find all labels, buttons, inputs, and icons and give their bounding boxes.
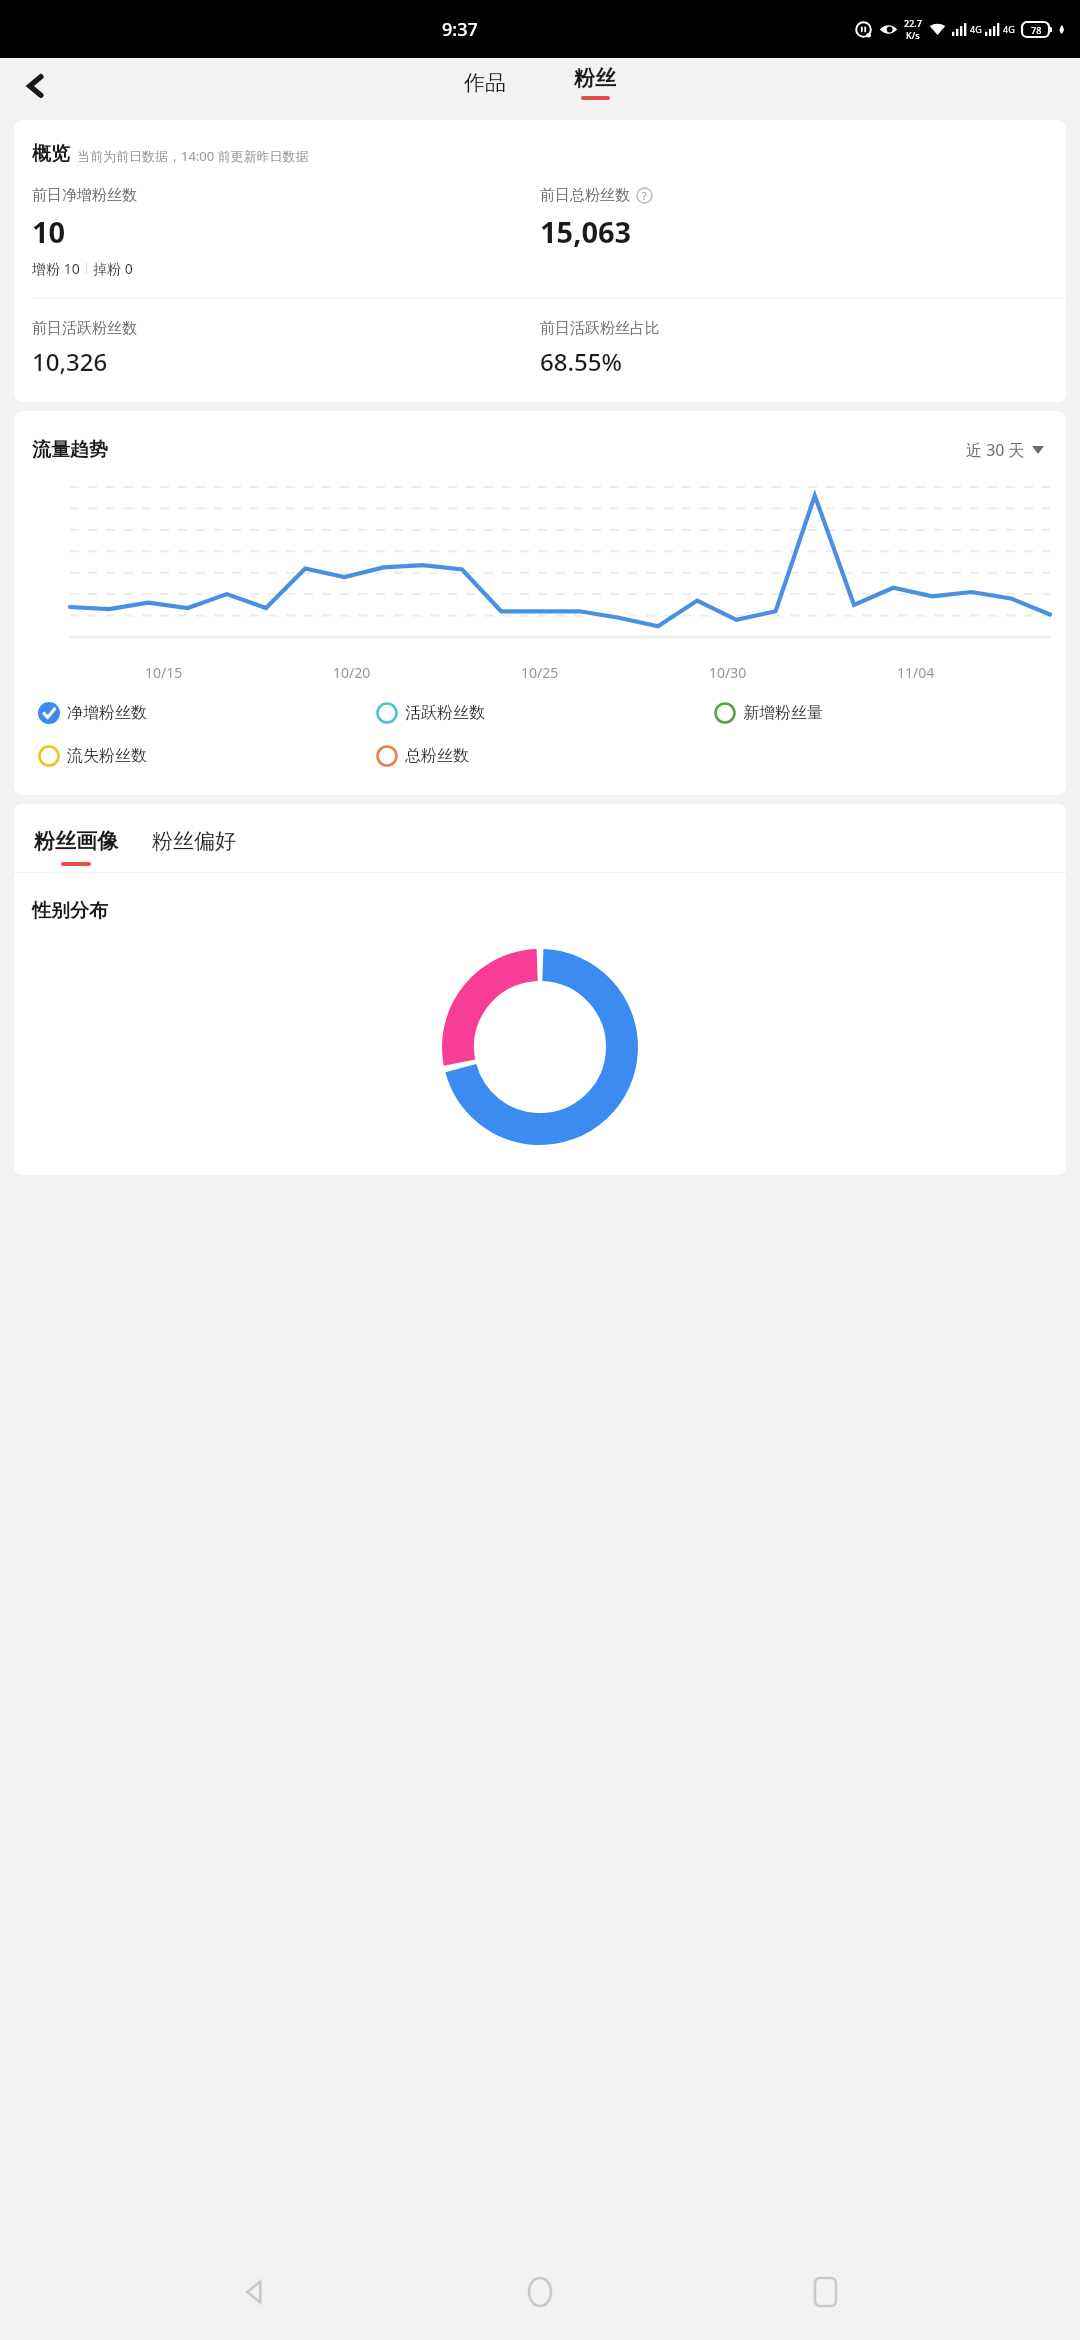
button[interactable]: 作品 <box>448 66 522 100</box>
staticText: 流失粉丝数 <box>67 746 147 766</box>
staticText: 当前为前日数据，14:00 前更新昨日数据 <box>77 147 309 165</box>
staticText: 增粉 10 <box>32 259 80 278</box>
staticText: 前日活跃粉丝占比 <box>540 319 660 338</box>
staticText: 新增粉丝量 <box>743 703 823 723</box>
staticText: 活跃粉丝数 <box>405 703 485 723</box>
staticText: 总粉丝数 <box>405 746 469 766</box>
staticText: 10,326 <box>32 345 108 378</box>
staticText: 11/04 <box>897 663 935 682</box>
staticText: 掉粉 0 <box>93 259 133 278</box>
staticText: 68.55% <box>540 345 622 378</box>
staticText: 前日净增粉丝数 <box>32 186 137 205</box>
button[interactable]: 近 30 天 <box>962 435 1048 465</box>
staticText: 作品 <box>464 70 506 96</box>
staticText: 10/20 <box>333 663 371 682</box>
button[interactable]: 总粉丝数 <box>376 743 714 769</box>
button[interactable]: 说明 <box>636 187 653 204</box>
staticText: 粉丝画像 <box>34 828 118 854</box>
staticText: 性别分布 <box>32 899 108 923</box>
staticText: 9:37 <box>442 17 478 42</box>
staticText: K/s <box>906 29 920 41</box>
button[interactable]: 活跃粉丝数 <box>376 700 714 726</box>
button[interactable]: Recents <box>795 2262 855 2322</box>
button[interactable]: 粉丝偏好 <box>150 828 238 854</box>
staticText: 4G <box>1003 23 1015 35</box>
staticText: 10/30 <box>709 663 747 682</box>
staticText: 15,063 <box>540 212 632 251</box>
button[interactable]: 新增粉丝量 <box>714 700 1052 726</box>
button[interactable]: 净增粉丝数 <box>38 700 376 726</box>
staticText: 近 30 天 <box>966 439 1025 461</box>
staticText: 10/15 <box>145 663 183 682</box>
staticText: 10/25 <box>521 663 559 682</box>
staticText: 4G <box>970 23 982 35</box>
staticText: 流量趋势 <box>32 438 108 462</box>
staticText: 78 <box>1031 24 1042 36</box>
staticText: 概览 <box>32 142 70 166</box>
button[interactable]: 流失粉丝数 <box>38 743 376 769</box>
button[interactable]: 粉丝 <box>558 61 632 104</box>
button[interactable]: Back <box>10 60 62 112</box>
staticText: 前日活跃粉丝数 <box>32 319 137 338</box>
staticText: 粉丝 <box>574 65 616 91</box>
staticText: 前日总粉丝数 <box>540 186 630 205</box>
button[interactable]: 粉丝画像 <box>32 828 120 866</box>
staticText: ? <box>642 188 647 203</box>
button[interactable]: Back <box>225 2262 285 2322</box>
button[interactable]: Home <box>510 2262 570 2322</box>
staticText: 净增粉丝数 <box>67 703 147 723</box>
staticText: 22.7 <box>904 17 922 29</box>
staticText: 粉丝偏好 <box>152 828 236 854</box>
staticText: 10 <box>32 212 66 251</box>
